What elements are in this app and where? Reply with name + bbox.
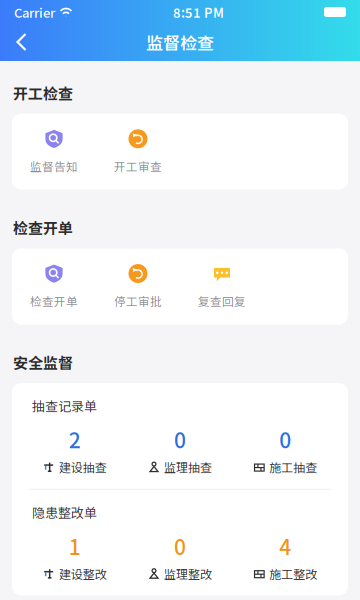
button[interactable]: 停工审批 bbox=[96, 258, 180, 314]
button[interactable]: 1 bbox=[22, 531, 127, 582]
button[interactable]: 2 bbox=[22, 424, 127, 476]
button[interactable]: 开工审查 bbox=[96, 124, 180, 180]
staticText: 施工抽查 bbox=[269, 458, 317, 476]
staticText: 抽查记录单 bbox=[32, 396, 97, 415]
staticText: 8:51 PM bbox=[173, 3, 224, 21]
staticText: 停工审批 bbox=[114, 292, 162, 309]
staticText: 0 bbox=[174, 424, 186, 454]
staticText: 监督告知 bbox=[30, 158, 78, 175]
staticText: 监督检查 bbox=[146, 30, 214, 54]
button[interactable]: 0 bbox=[233, 424, 338, 476]
staticText: 0 bbox=[279, 424, 291, 454]
staticText: 4 bbox=[279, 531, 291, 561]
button[interactable]: 4 bbox=[233, 531, 338, 582]
button[interactable]: 监督告知 bbox=[12, 124, 96, 180]
staticText: 检查开单 bbox=[30, 292, 78, 309]
button[interactable]: 0 bbox=[127, 424, 233, 476]
staticText: 安全监督 bbox=[13, 351, 73, 373]
staticText: 施工整改 bbox=[269, 565, 317, 582]
staticText: 复查回复 bbox=[198, 292, 246, 309]
staticText: Carrier bbox=[14, 3, 55, 21]
staticText: 0 bbox=[174, 531, 186, 561]
button[interactable]: Back bbox=[0, 24, 41, 59]
staticText: 2 bbox=[69, 424, 81, 454]
staticText: 隐患整改单 bbox=[32, 503, 97, 522]
staticText: 检查开单 bbox=[13, 217, 73, 238]
button[interactable]: 检查开单 bbox=[12, 258, 96, 314]
staticText: 开工审查 bbox=[114, 158, 162, 175]
button[interactable]: 0 bbox=[127, 531, 233, 582]
staticText: 建设抽查 bbox=[59, 458, 107, 476]
staticText: 监理整改 bbox=[164, 565, 212, 582]
button[interactable]: 复查回复 bbox=[180, 258, 264, 314]
staticText: 监理抽查 bbox=[164, 458, 212, 476]
staticText: 开工检查 bbox=[13, 82, 73, 104]
staticText: 1 bbox=[69, 531, 81, 561]
staticText: 建设整改 bbox=[59, 565, 107, 582]
